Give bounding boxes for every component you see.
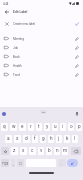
button[interactable]: Book bbox=[0, 52, 83, 61]
staticText: e bbox=[21, 124, 24, 130]
staticText: d bbox=[25, 136, 28, 142]
button[interactable]: Shift bbox=[1, 147, 9, 155]
staticText: x bbox=[22, 148, 25, 154]
button[interactable]: ?123 bbox=[1, 159, 9, 167]
staticText: c bbox=[31, 148, 34, 154]
staticText: a bbox=[7, 136, 10, 142]
button[interactable]: v bbox=[38, 147, 44, 155]
staticText: k bbox=[66, 136, 69, 142]
button[interactable]: Edit Meeting bbox=[70, 34, 83, 43]
staticText: Book bbox=[13, 55, 20, 59]
button[interactable]: p bbox=[76, 123, 82, 131]
staticText: q bbox=[3, 124, 6, 130]
staticText: l bbox=[74, 136, 76, 142]
button[interactable]: Enter bbox=[67, 159, 78, 167]
button[interactable]: h bbox=[48, 135, 54, 143]
button[interactable]: c bbox=[29, 147, 36, 155]
button[interactable]: e bbox=[19, 123, 26, 131]
button[interactable]: i bbox=[60, 123, 66, 131]
button[interactable]: Edit Book bbox=[70, 52, 83, 61]
staticText: f bbox=[34, 136, 36, 142]
button[interactable]: l bbox=[72, 135, 78, 143]
staticText: , bbox=[13, 161, 14, 166]
button[interactable]: o bbox=[68, 123, 74, 131]
staticText: h bbox=[50, 136, 53, 142]
staticText: 4:44 bbox=[3, 2, 9, 5]
staticText: . bbox=[61, 161, 63, 166]
staticText: i bbox=[62, 124, 64, 130]
staticText: Edit Label bbox=[13, 10, 28, 14]
button[interactable]: GIF bbox=[40, 110, 47, 114]
staticText: ?123 bbox=[2, 162, 9, 165]
staticText: p bbox=[78, 124, 81, 130]
button[interactable]: j bbox=[56, 135, 62, 143]
button[interactable]: x bbox=[20, 147, 27, 155]
staticText: Create new label bbox=[13, 22, 36, 26]
staticText: u bbox=[54, 124, 57, 130]
staticText: o bbox=[70, 124, 73, 130]
staticText: z bbox=[13, 148, 16, 154]
staticText: b bbox=[48, 148, 51, 154]
staticText: j bbox=[58, 136, 60, 142]
button[interactable]: Job bbox=[0, 43, 83, 52]
staticText: m bbox=[63, 148, 68, 154]
button[interactable]: Backspace bbox=[71, 147, 81, 155]
button[interactable]: Meeting bbox=[0, 34, 83, 43]
button[interactable]: n bbox=[54, 147, 60, 155]
button[interactable]: u bbox=[52, 123, 58, 131]
button[interactable]: t bbox=[36, 123, 42, 131]
button[interactable]: g bbox=[40, 135, 46, 143]
button[interactable]: Health bbox=[0, 61, 83, 70]
button[interactable]: Voice input bbox=[74, 111, 79, 116]
button[interactable]: Back bbox=[0, 7, 13, 16]
staticText: Food bbox=[13, 73, 20, 77]
staticText: w bbox=[12, 124, 16, 130]
button[interactable]: Google bbox=[2, 112, 6, 116]
staticText: t bbox=[38, 124, 40, 130]
button[interactable]: z bbox=[11, 147, 18, 155]
staticText: Health bbox=[13, 64, 22, 68]
staticText: g bbox=[42, 136, 45, 142]
staticText: r bbox=[30, 124, 32, 130]
button[interactable]: Comma bbox=[11, 159, 15, 167]
button[interactable]: b bbox=[46, 147, 52, 155]
button[interactable]: f bbox=[32, 135, 38, 143]
button[interactable]: Edit Food bbox=[70, 70, 83, 79]
staticText: v bbox=[40, 148, 43, 154]
button[interactable]: y bbox=[44, 123, 50, 131]
staticText: n bbox=[56, 148, 59, 154]
staticText: Meeting bbox=[13, 37, 24, 41]
button[interactable]: Confirm bbox=[70, 19, 83, 29]
button[interactable]: m bbox=[62, 147, 68, 155]
button[interactable]: s bbox=[14, 135, 21, 143]
button[interactable]: Edit Health bbox=[70, 61, 83, 70]
button[interactable]: d bbox=[23, 135, 30, 143]
button[interactable]: Edit Job bbox=[70, 43, 83, 52]
staticText: y bbox=[46, 124, 49, 130]
staticText: Job bbox=[13, 46, 19, 50]
button[interactable]: Emoji bbox=[17, 159, 24, 167]
staticText: GIF bbox=[42, 111, 46, 114]
button[interactable]: Food bbox=[0, 70, 83, 79]
staticText: s bbox=[16, 136, 19, 142]
button[interactable]: k bbox=[64, 135, 70, 143]
button[interactable]: Create new label bbox=[0, 19, 83, 29]
button[interactable]: q bbox=[1, 123, 8, 131]
button[interactable]: a bbox=[5, 135, 12, 143]
button[interactable]: r bbox=[28, 123, 34, 131]
button[interactable]: w bbox=[10, 123, 17, 131]
